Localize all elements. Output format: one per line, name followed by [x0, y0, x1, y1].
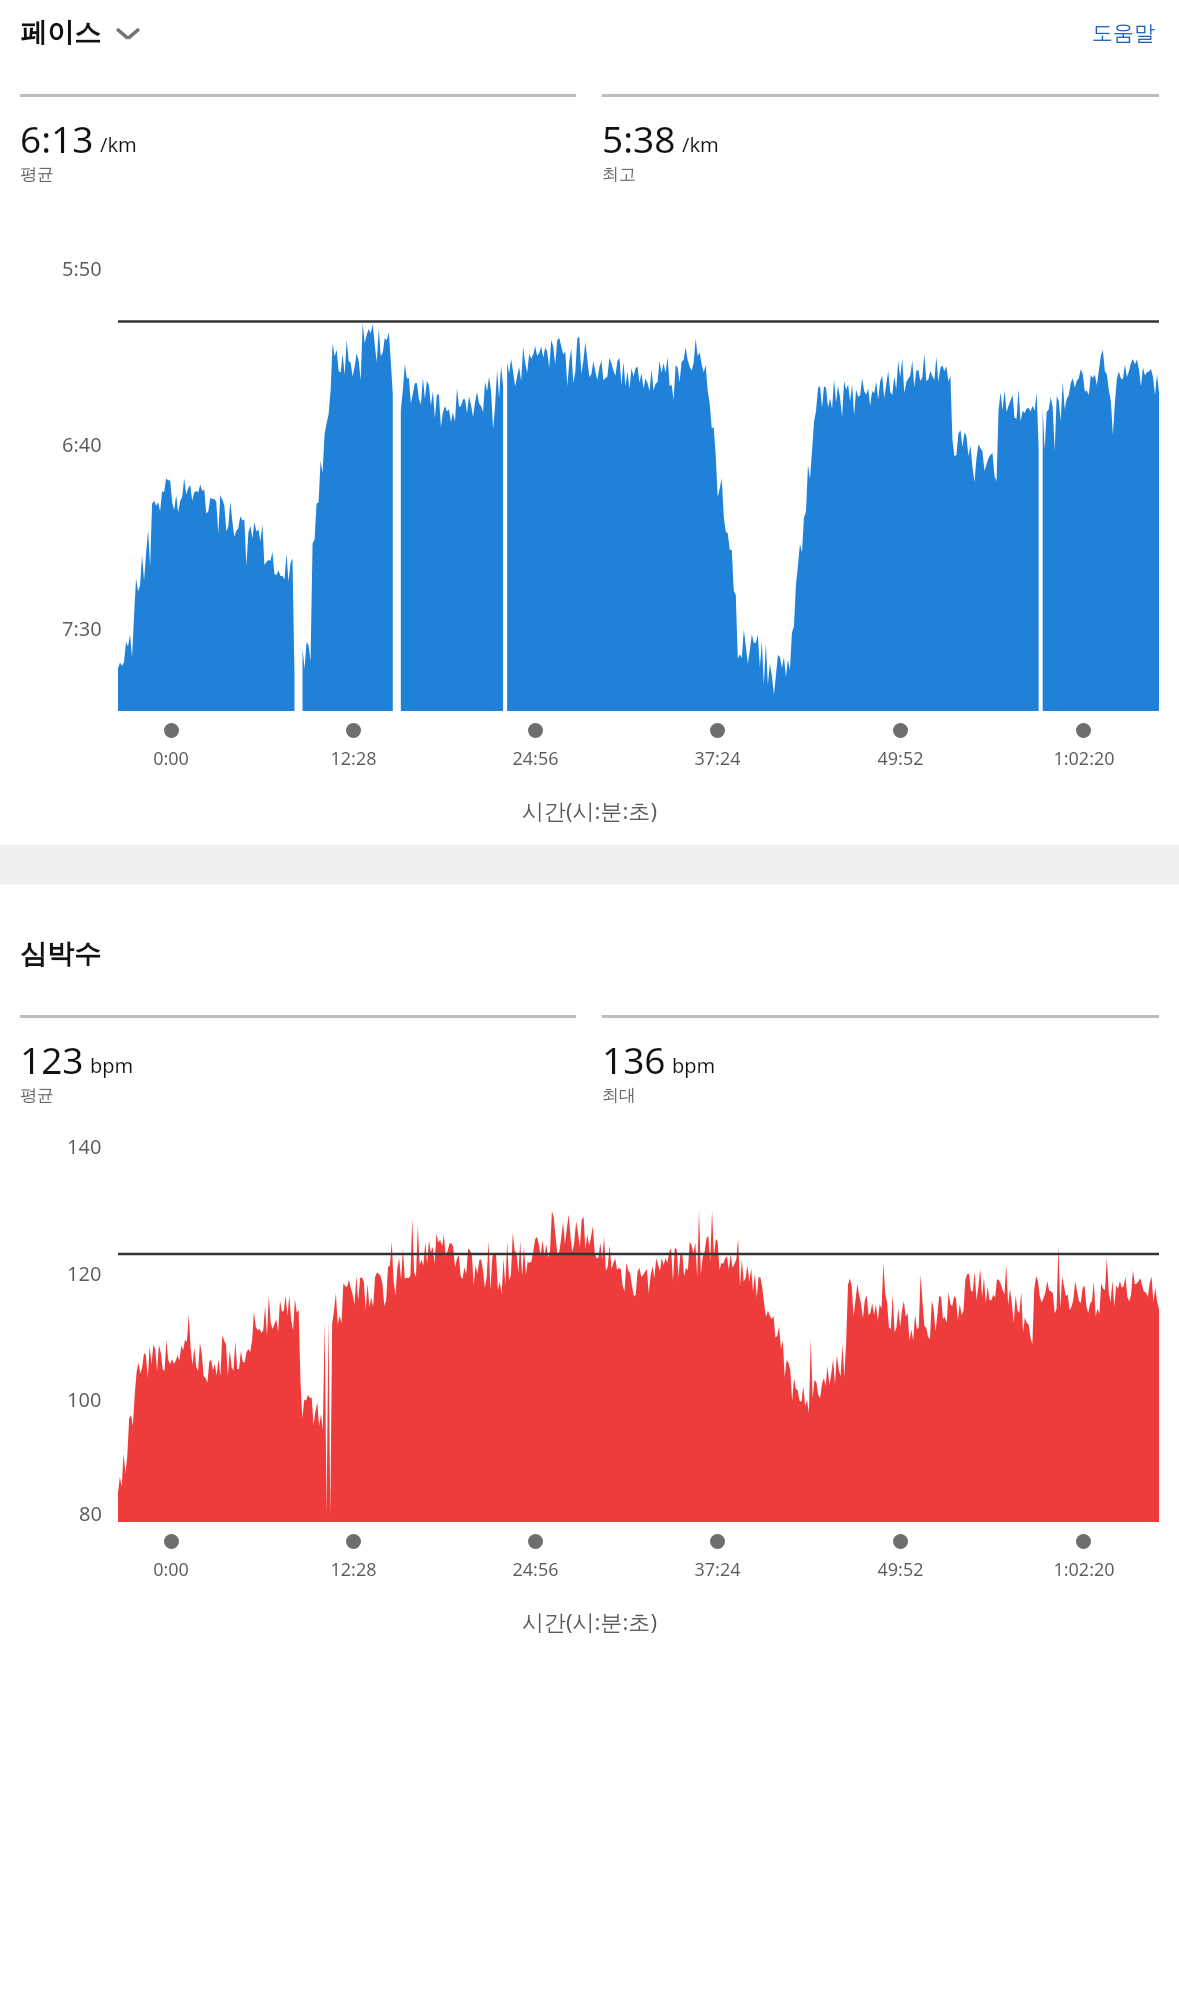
staticText: 120	[67, 1260, 102, 1287]
staticText: 0:00	[153, 1557, 189, 1582]
staticText: 49:52	[877, 1557, 924, 1582]
button[interactable]: 페이스	[20, 12, 141, 54]
button[interactable]: 심박수	[20, 933, 101, 975]
staticText: 평균	[20, 164, 54, 185]
staticText: 12:28	[330, 1557, 377, 1582]
staticText: 5:38	[602, 113, 676, 163]
staticText: 100	[67, 1386, 102, 1413]
staticText: 6:13	[20, 113, 94, 163]
staticText: 페이스	[20, 16, 101, 50]
staticText: 49:52	[877, 746, 924, 771]
staticText: 6:40	[62, 431, 102, 458]
staticText: bpm	[672, 1052, 716, 1079]
staticText: 140	[67, 1133, 102, 1160]
staticText: /km	[682, 131, 719, 158]
staticText: 1:02:20	[1053, 746, 1115, 771]
staticText: 24:56	[512, 746, 559, 771]
button[interactable]: 도움말	[1088, 14, 1159, 52]
staticText: 37:24	[694, 1557, 741, 1582]
staticText: 시간(시:분:초)	[522, 1606, 657, 1636]
staticText: /km	[100, 131, 137, 158]
staticText: 123	[20, 1034, 84, 1084]
staticText: 5:50	[62, 255, 102, 282]
staticText: 12:28	[330, 746, 377, 771]
staticText: 0:00	[153, 746, 189, 771]
staticText: 136	[602, 1034, 666, 1084]
staticText: 1:02:20	[1053, 1557, 1115, 1582]
staticText: 80	[79, 1500, 102, 1527]
staticText: 심박수	[20, 937, 101, 971]
staticText: 도움말	[1092, 20, 1155, 46]
staticText: 24:56	[512, 1557, 559, 1582]
staticText: 7:30	[62, 615, 102, 642]
other: Change metric	[115, 26, 141, 41]
staticText: bpm	[90, 1052, 134, 1079]
staticText: 평균	[20, 1085, 54, 1106]
staticText: 시간(시:분:초)	[522, 795, 657, 825]
staticText: 최고	[602, 164, 636, 185]
staticText: 최대	[602, 1085, 636, 1106]
staticText: 37:24	[694, 746, 741, 771]
